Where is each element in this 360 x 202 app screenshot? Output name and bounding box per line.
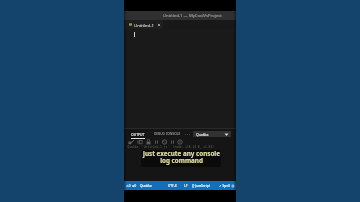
staticText: OUTPUT xyxy=(131,132,145,137)
other: More actions xyxy=(184,133,190,136)
staticText: Quokka 'Untitled-1.js' (node: v18.14.0, … xyxy=(124,145,215,149)
button[interactable]: Quokka xyxy=(193,131,231,137)
staticText: ⚠0 ⊗0 xyxy=(126,184,137,188)
other: Close tab xyxy=(157,23,161,27)
staticText: UTF-8 xyxy=(168,184,177,188)
button[interactable]: OUTPUT xyxy=(131,132,145,137)
staticText: Untitled-1 xyxy=(134,22,155,28)
button[interactable]: DEBUG CONSOLE xyxy=(154,132,181,136)
button[interactable]: ⚠0 ⊗0 xyxy=(126,184,137,188)
button[interactable]: Untitled-1 xyxy=(124,20,163,29)
other: Notifications xyxy=(231,184,235,188)
staticText: Quokka xyxy=(140,184,152,188)
staticText: LF xyxy=(184,184,188,188)
staticText: Untitled-1 — MyCoolVsProject xyxy=(163,13,222,19)
staticText: Quokka xyxy=(196,132,209,137)
staticText: {} JavaScript xyxy=(192,184,210,188)
staticText: ✓ Spell xyxy=(219,184,230,188)
staticText: just execute any console log command xyxy=(143,150,220,164)
